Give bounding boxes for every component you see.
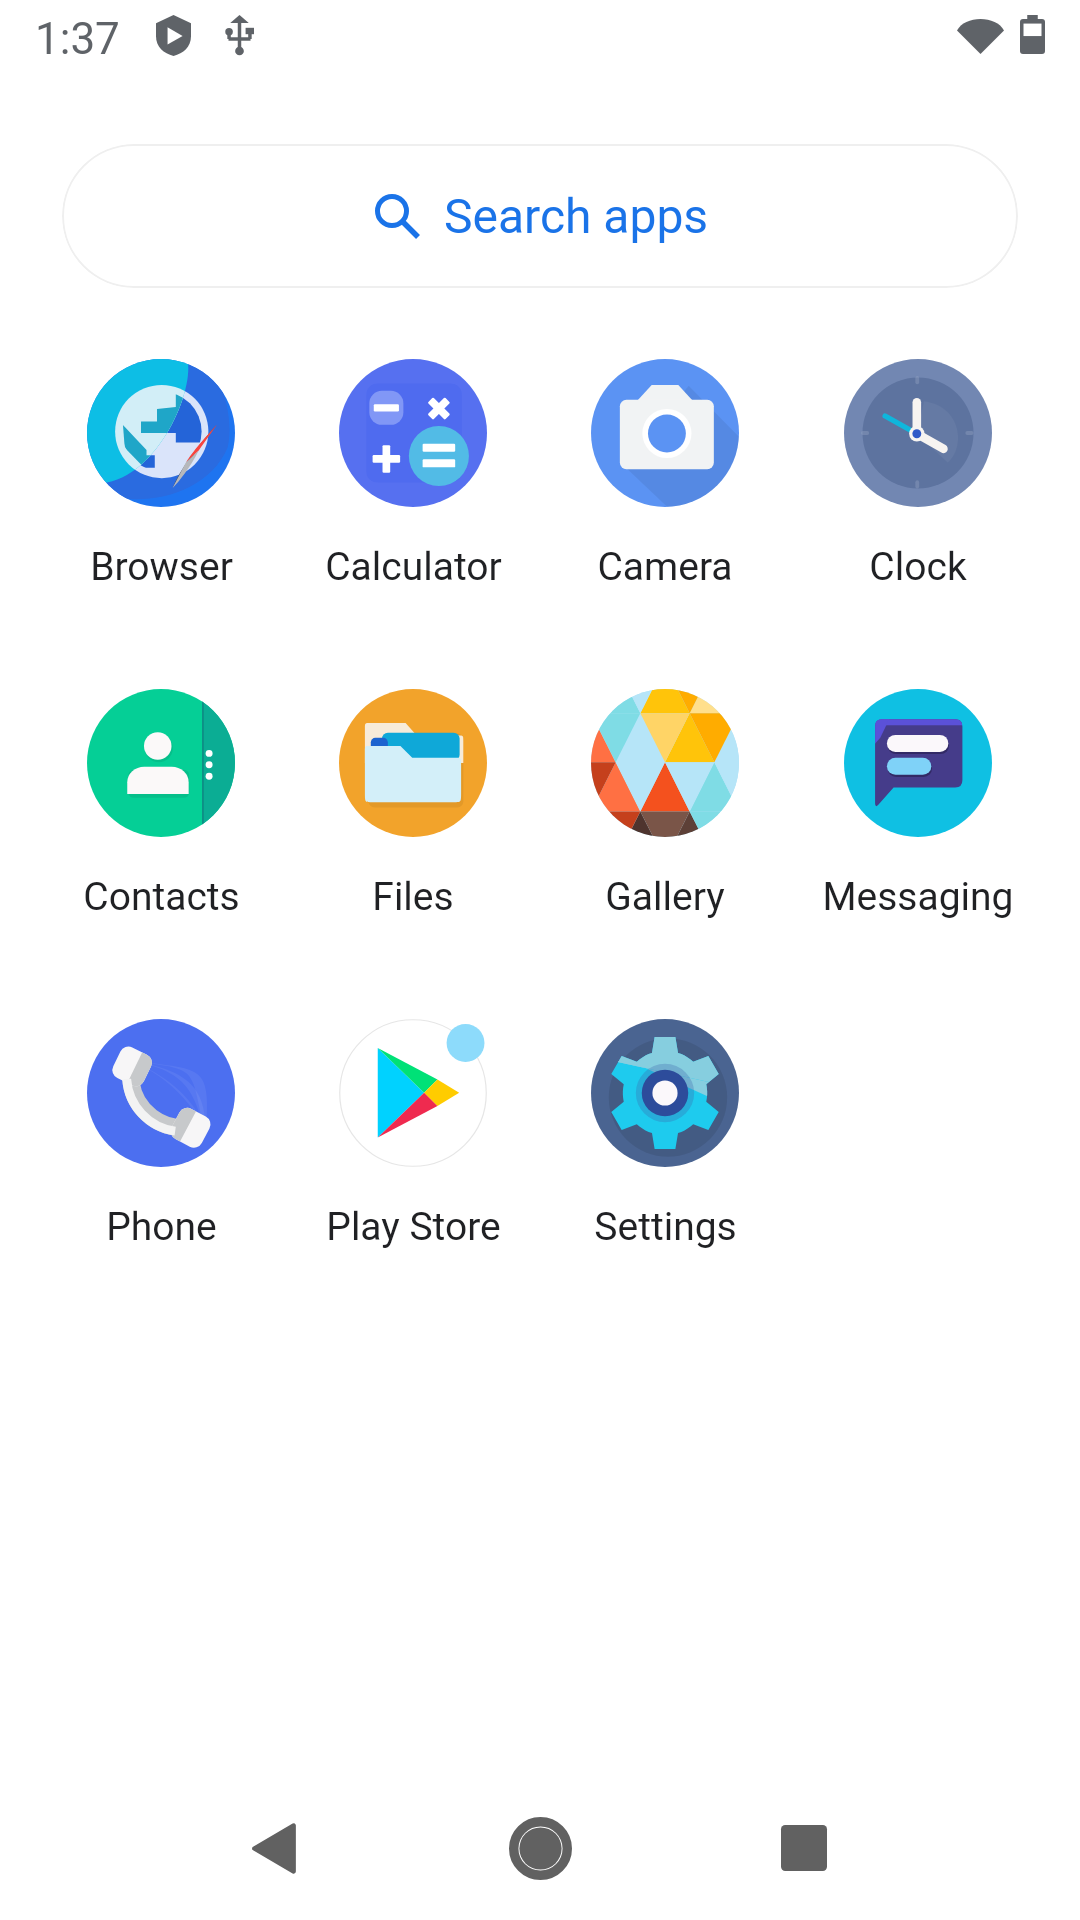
staticText: Search apps [444,188,709,244]
button[interactable]: Phone [35,1005,287,1250]
button[interactable]: Calculator [287,345,539,590]
staticText: Phone [106,1204,217,1250]
button[interactable]: Contacts [35,675,287,920]
staticText: Settings [594,1204,737,1250]
staticText: Gallery [605,874,725,920]
button[interactable]: Settings [539,1005,791,1250]
staticText: Clock [869,544,967,590]
button[interactable]: Files [287,675,539,920]
staticText: Files [372,874,454,920]
button[interactable]: Recent apps [744,1788,864,1908]
staticText: Messaging [822,874,1014,920]
staticText: Contacts [83,874,240,920]
button[interactable]: Clock [792,345,1044,590]
staticText: Play Store [326,1204,501,1250]
button[interactable]: Home [480,1788,600,1908]
staticText: Camera [597,544,733,590]
button[interactable]: Gallery [539,675,791,920]
button[interactable]: Browser [35,345,287,590]
button[interactable]: Back [213,1788,333,1908]
staticText: Browser [90,544,233,590]
button[interactable]: Search apps [62,144,1018,288]
button[interactable]: Camera [539,345,791,590]
button[interactable]: Play Store [287,1005,539,1250]
staticText: 1:37 [35,13,120,65]
staticText: Calculator [325,544,502,590]
button[interactable]: Messaging [792,675,1044,920]
